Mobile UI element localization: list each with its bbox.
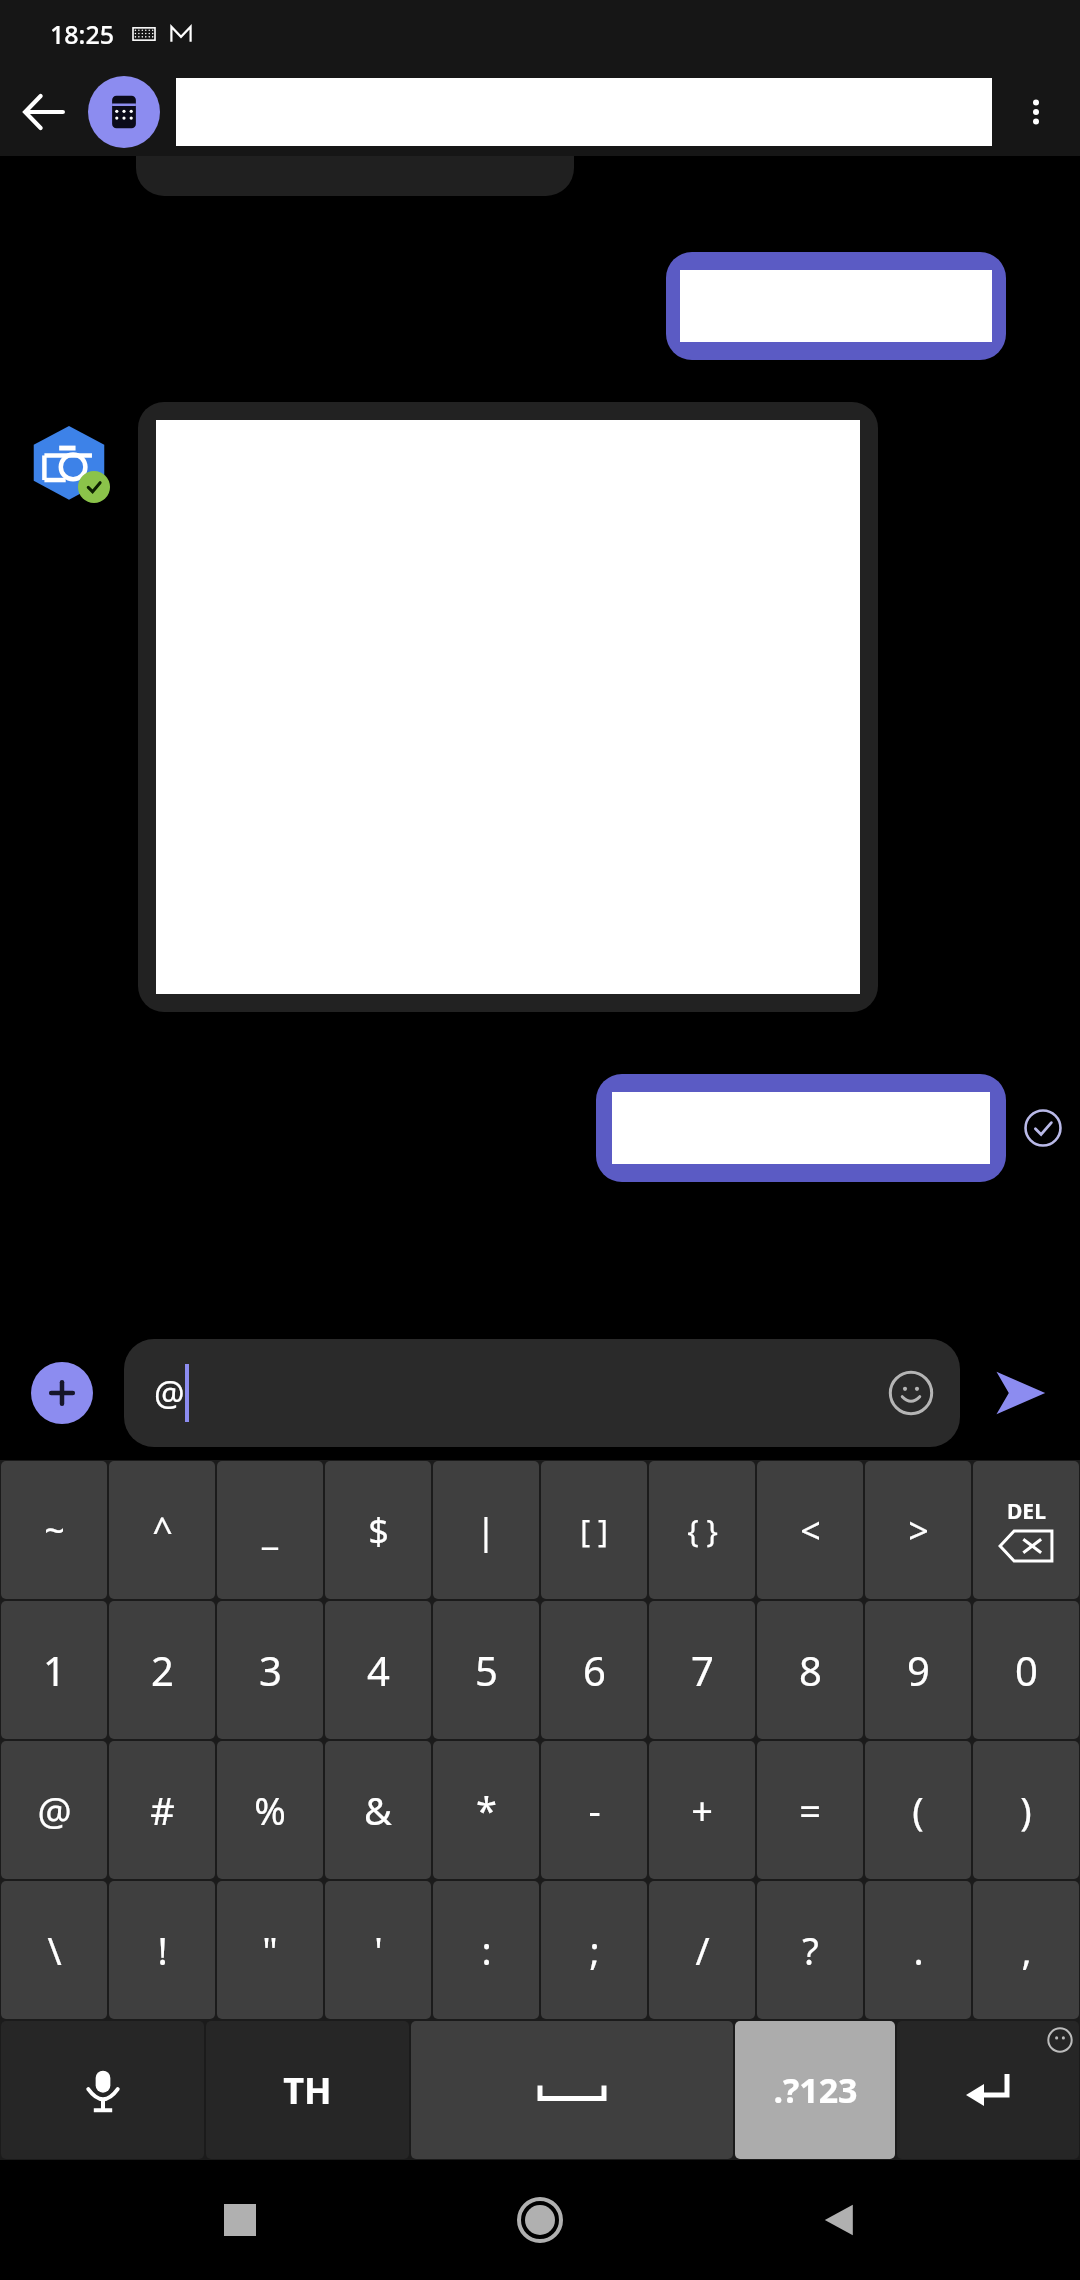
staticText: 4	[367, 1643, 390, 1697]
staticText: [ ]	[580, 1510, 608, 1551]
button[interactable]: Delete	[973, 1461, 1079, 1599]
button[interactable]: '	[325, 1881, 431, 2019]
staticText: :	[481, 1924, 492, 1976]
staticText: (	[912, 1784, 924, 1836]
staticText: .?123	[773, 2067, 858, 2113]
staticText: @	[154, 1370, 185, 1416]
button[interactable]: |	[433, 1461, 539, 1599]
staticText: _	[262, 1506, 278, 1555]
button[interactable]: Voice input	[1, 2021, 204, 2159]
staticText: $	[368, 1506, 389, 1555]
staticText: 18:25	[50, 17, 115, 51]
staticText: >	[908, 1506, 929, 1555]
button[interactable]: +	[649, 1741, 755, 1879]
button[interactable]: <	[757, 1461, 863, 1599]
staticText: 8	[799, 1643, 822, 1697]
button[interactable]: TH	[206, 2021, 409, 2159]
button[interactable]: 5	[433, 1601, 539, 1739]
button[interactable]: :	[433, 1881, 539, 2019]
staticText: &	[364, 1784, 392, 1836]
button[interactable]: #	[109, 1741, 215, 1879]
button[interactable]: More options	[992, 68, 1080, 156]
button[interactable]: 8	[757, 1601, 863, 1739]
staticText: ;	[589, 1924, 600, 1976]
staticText: 7	[691, 1643, 714, 1697]
button[interactable]: Add attachment	[0, 1326, 124, 1460]
staticText: )	[1020, 1784, 1032, 1836]
button[interactable]: Send	[960, 1326, 1080, 1460]
staticText: /	[695, 1924, 710, 1976]
button[interactable]: ^	[109, 1461, 215, 1599]
staticText: 3	[259, 1643, 282, 1697]
button[interactable]: Recents	[180, 2160, 300, 2280]
staticText: DEL	[1007, 1497, 1046, 1526]
button[interactable]: *	[433, 1741, 539, 1879]
button[interactable]: Contact avatar	[88, 76, 160, 148]
staticText: %	[254, 1784, 286, 1836]
button[interactable]: [ ]	[541, 1461, 647, 1599]
button[interactable]: "	[217, 1881, 323, 2019]
button[interactable]: )	[973, 1741, 1079, 1879]
staticText: !	[157, 1924, 168, 1976]
button[interactable]: { }	[649, 1461, 755, 1599]
button[interactable]: 0	[973, 1601, 1079, 1739]
button[interactable]: &	[325, 1741, 431, 1879]
button[interactable]: 2	[109, 1601, 215, 1739]
staticText: TH	[283, 2066, 332, 2115]
staticText: ^	[152, 1506, 173, 1555]
button[interactable]: ?	[757, 1881, 863, 2019]
staticText: *	[476, 1784, 497, 1836]
button[interactable]: _	[217, 1461, 323, 1599]
button[interactable]: @	[124, 1339, 960, 1447]
button[interactable]: Space	[411, 2021, 733, 2159]
button[interactable]: ~	[1, 1461, 107, 1599]
button[interactable]: 9	[865, 1601, 971, 1739]
button[interactable]: =	[757, 1741, 863, 1879]
button[interactable]: !	[109, 1881, 215, 2019]
staticText: 9	[907, 1643, 930, 1697]
button[interactable]: 4	[325, 1601, 431, 1739]
staticText: 5	[475, 1643, 498, 1697]
staticText: @	[37, 1784, 72, 1836]
staticText: +	[691, 1784, 713, 1836]
button[interactable]: -	[541, 1741, 647, 1879]
button[interactable]: 3	[217, 1601, 323, 1739]
button[interactable]	[596, 1074, 1006, 1182]
staticText: .	[913, 1924, 924, 1976]
staticText: ~	[44, 1506, 65, 1555]
button[interactable]: \	[1, 1881, 107, 2019]
staticText: <	[800, 1506, 821, 1555]
button[interactable]: 7	[649, 1601, 755, 1739]
button[interactable]: Enter	[897, 2021, 1079, 2159]
button[interactable]: ,	[973, 1881, 1079, 2019]
button[interactable]: ;	[541, 1881, 647, 2019]
button[interactable]	[136, 156, 574, 196]
staticText: -	[588, 1784, 601, 1836]
button[interactable]: 1	[1, 1601, 107, 1739]
button[interactable]: >	[865, 1461, 971, 1599]
button[interactable]: Emoji	[886, 1368, 936, 1418]
staticText: |	[476, 1506, 496, 1555]
button[interactable]: 6	[541, 1601, 647, 1739]
staticText: "	[262, 1924, 278, 1976]
staticText: ,	[1021, 1924, 1032, 1976]
staticText: { }	[687, 1510, 718, 1551]
button[interactable]: @	[1, 1741, 107, 1879]
staticText: #	[150, 1784, 175, 1836]
button[interactable]: Home	[480, 2160, 600, 2280]
button[interactable]: Back	[0, 68, 88, 156]
staticText: 0	[1015, 1643, 1038, 1697]
button[interactable]: /	[649, 1881, 755, 2019]
button[interactable]: Back	[780, 2160, 900, 2280]
staticText: 2	[151, 1643, 174, 1697]
button[interactable]: .?123	[735, 2021, 895, 2159]
button[interactable]: (	[865, 1741, 971, 1879]
button[interactable]	[666, 252, 1006, 360]
button[interactable]: .	[865, 1881, 971, 2019]
button[interactable]: $	[325, 1461, 431, 1599]
staticText: =	[799, 1784, 821, 1836]
staticText: ?	[802, 1924, 819, 1976]
button[interactable]: %	[217, 1741, 323, 1879]
